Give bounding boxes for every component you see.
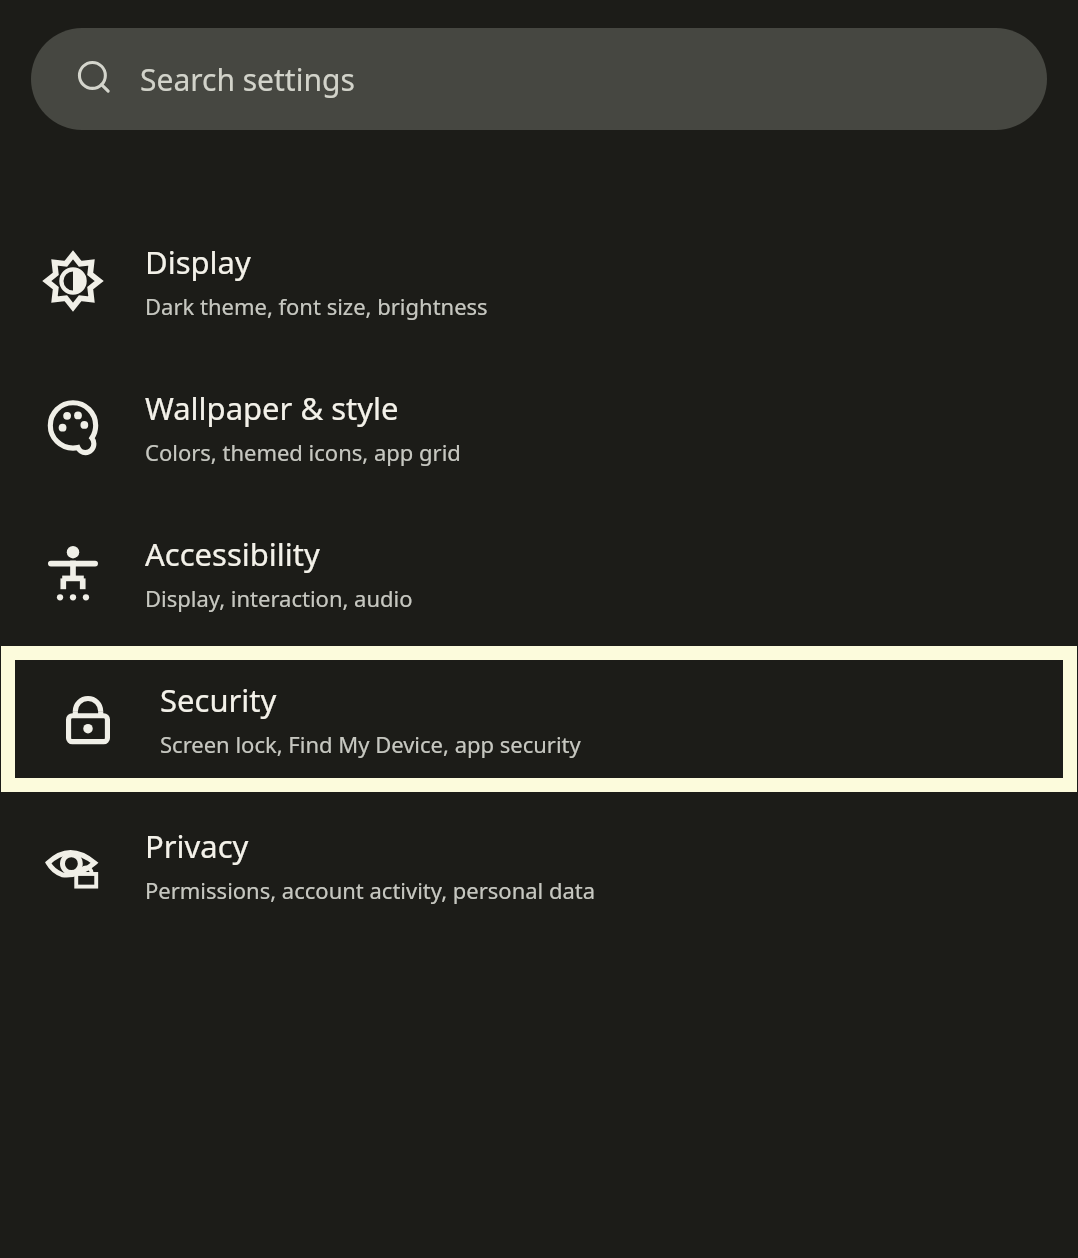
staticText: Screen lock, Find My Device, app securit… (160, 729, 581, 759)
staticText: Permissions, account activity, personal … (145, 875, 596, 905)
staticText: Search settings (140, 59, 355, 100)
staticText: Privacy (145, 825, 249, 867)
staticText: Colors, themed icons, app grid (145, 437, 461, 467)
button[interactable]: Security (15, 660, 1063, 778)
button[interactable]: Display (0, 208, 1078, 354)
staticText: Wallpaper & style (145, 387, 399, 429)
staticText: Dark theme, font size, brightness (145, 291, 488, 321)
button[interactable]: Wallpaper & style (0, 354, 1078, 500)
staticText: Display, interaction, audio (145, 583, 413, 613)
button[interactable]: Accessibility (0, 500, 1078, 646)
button[interactable]: Privacy (0, 792, 1078, 938)
button[interactable]: Search settings (31, 28, 1047, 130)
staticText: Security (160, 679, 277, 721)
staticText: Display (145, 241, 251, 283)
staticText: Accessibility (145, 533, 320, 575)
